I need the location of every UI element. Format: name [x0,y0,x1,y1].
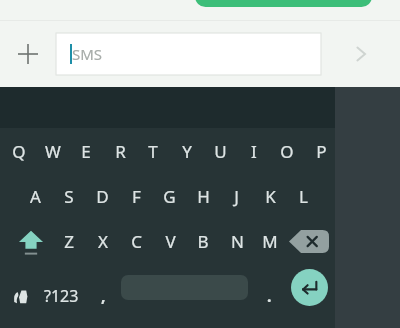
button[interactable]: K [253,174,287,219]
staticText: H [197,185,210,208]
staticText: Q [12,140,26,163]
staticText: X [98,230,108,253]
button[interactable]: A [18,174,52,219]
button[interactable]: Add attachment [0,26,56,82]
staticText: V [165,230,176,253]
button[interactable]: L [286,174,320,219]
staticText: T [148,140,158,163]
staticText: , [101,285,106,307]
button[interactable]: M [253,219,287,264]
staticText: I [251,140,257,163]
staticText: E [81,140,91,163]
staticText: L [299,185,308,208]
staticText: N [231,230,244,253]
button[interactable]: Q [2,128,36,174]
staticText: B [197,230,209,253]
staticText: M [262,230,278,253]
button[interactable]: V [153,219,187,264]
button[interactable]: N [220,219,254,264]
button[interactable]: X [86,219,120,264]
button[interactable]: C [119,219,153,264]
button[interactable]: SMS [56,33,321,75]
staticText: Z [64,230,74,253]
button[interactable]: Enter [291,269,328,306]
button[interactable]: P [304,128,338,174]
button[interactable]: O [270,128,304,174]
staticText: S [64,185,74,208]
staticText: W [45,140,61,163]
button[interactable]: D [85,174,119,219]
button[interactable]: S [52,174,86,219]
button[interactable]: B [186,219,220,264]
button[interactable]: , [88,264,118,328]
button[interactable]: F [119,174,153,219]
button[interactable]: G [152,174,186,219]
staticText: ?123 [44,285,79,307]
button[interactable]: Y [170,128,204,174]
button[interactable]: Change keyboard [8,264,38,328]
button[interactable]: Shift [6,219,56,264]
staticText: A [30,185,41,208]
button[interactable]: T [136,128,170,174]
staticText: U [214,140,227,163]
button[interactable] [195,0,372,7]
staticText: G [163,185,176,208]
staticText: . [267,285,272,307]
button[interactable]: R [103,128,137,174]
button[interactable]: Backspace [289,230,329,253]
staticText: K [265,185,276,208]
button[interactable]: Z [52,219,86,264]
staticText: J [234,185,239,208]
staticText: F [132,185,141,208]
staticText: SMS [72,44,103,64]
button[interactable]: U [203,128,237,174]
staticText: R [115,140,126,163]
button[interactable]: E [69,128,103,174]
staticText: D [96,185,109,208]
staticText: Y [182,140,192,163]
button[interactable]: H [186,174,220,219]
staticText: O [280,140,294,163]
staticText: C [131,230,142,253]
button[interactable]: I [237,128,271,174]
button[interactable]: J [219,174,253,219]
button[interactable]: ?123 [38,264,84,328]
staticText: P [316,140,327,163]
button[interactable]: W [36,128,70,174]
button[interactable]: . [256,264,282,328]
